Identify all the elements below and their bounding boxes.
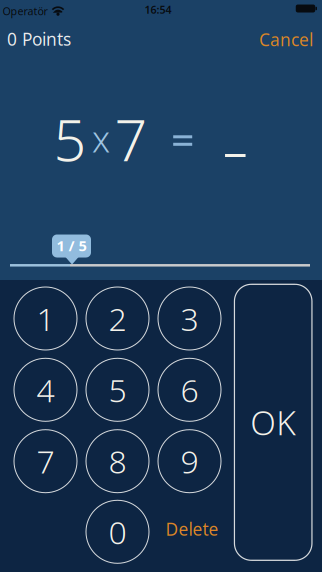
staticText: 16:54: [144, 2, 171, 17]
button[interactable]: 2: [86, 287, 149, 350]
staticText: 5: [53, 101, 86, 177]
button[interactable]: 3: [158, 287, 221, 350]
staticText: 8: [108, 440, 126, 482]
staticText: 0: [108, 511, 126, 553]
staticText: OK: [250, 400, 296, 444]
staticText: 0 Points: [7, 27, 71, 50]
staticText: 1 / 5: [56, 236, 86, 255]
button[interactable]: 7: [14, 430, 77, 493]
staticText: 6: [180, 369, 198, 411]
staticText: Cancel: [259, 28, 313, 51]
staticText: 9: [180, 440, 198, 482]
button[interactable]: Delete: [157, 509, 227, 549]
staticText: 5: [108, 369, 126, 411]
button[interactable]: 8: [86, 430, 149, 493]
button[interactable]: 0: [86, 500, 149, 563]
button[interactable]: OK: [234, 284, 312, 560]
staticText: Delete: [165, 517, 218, 540]
button[interactable]: Cancel: [251, 24, 321, 54]
staticText: x: [92, 115, 110, 162]
staticText: 2: [108, 297, 126, 340]
button[interactable]: 5: [86, 358, 149, 421]
button[interactable]: 4: [14, 358, 77, 421]
button[interactable]: 9: [158, 430, 221, 493]
button[interactable]: 1: [14, 287, 77, 350]
button[interactable]: 6: [158, 358, 221, 421]
staticText: 4: [36, 369, 54, 411]
staticText: 7: [36, 440, 54, 482]
staticText: 1: [36, 297, 54, 340]
staticText: Operatör: [2, 4, 47, 18]
staticText: 7: [114, 101, 147, 177]
staticText: 3: [180, 297, 198, 340]
